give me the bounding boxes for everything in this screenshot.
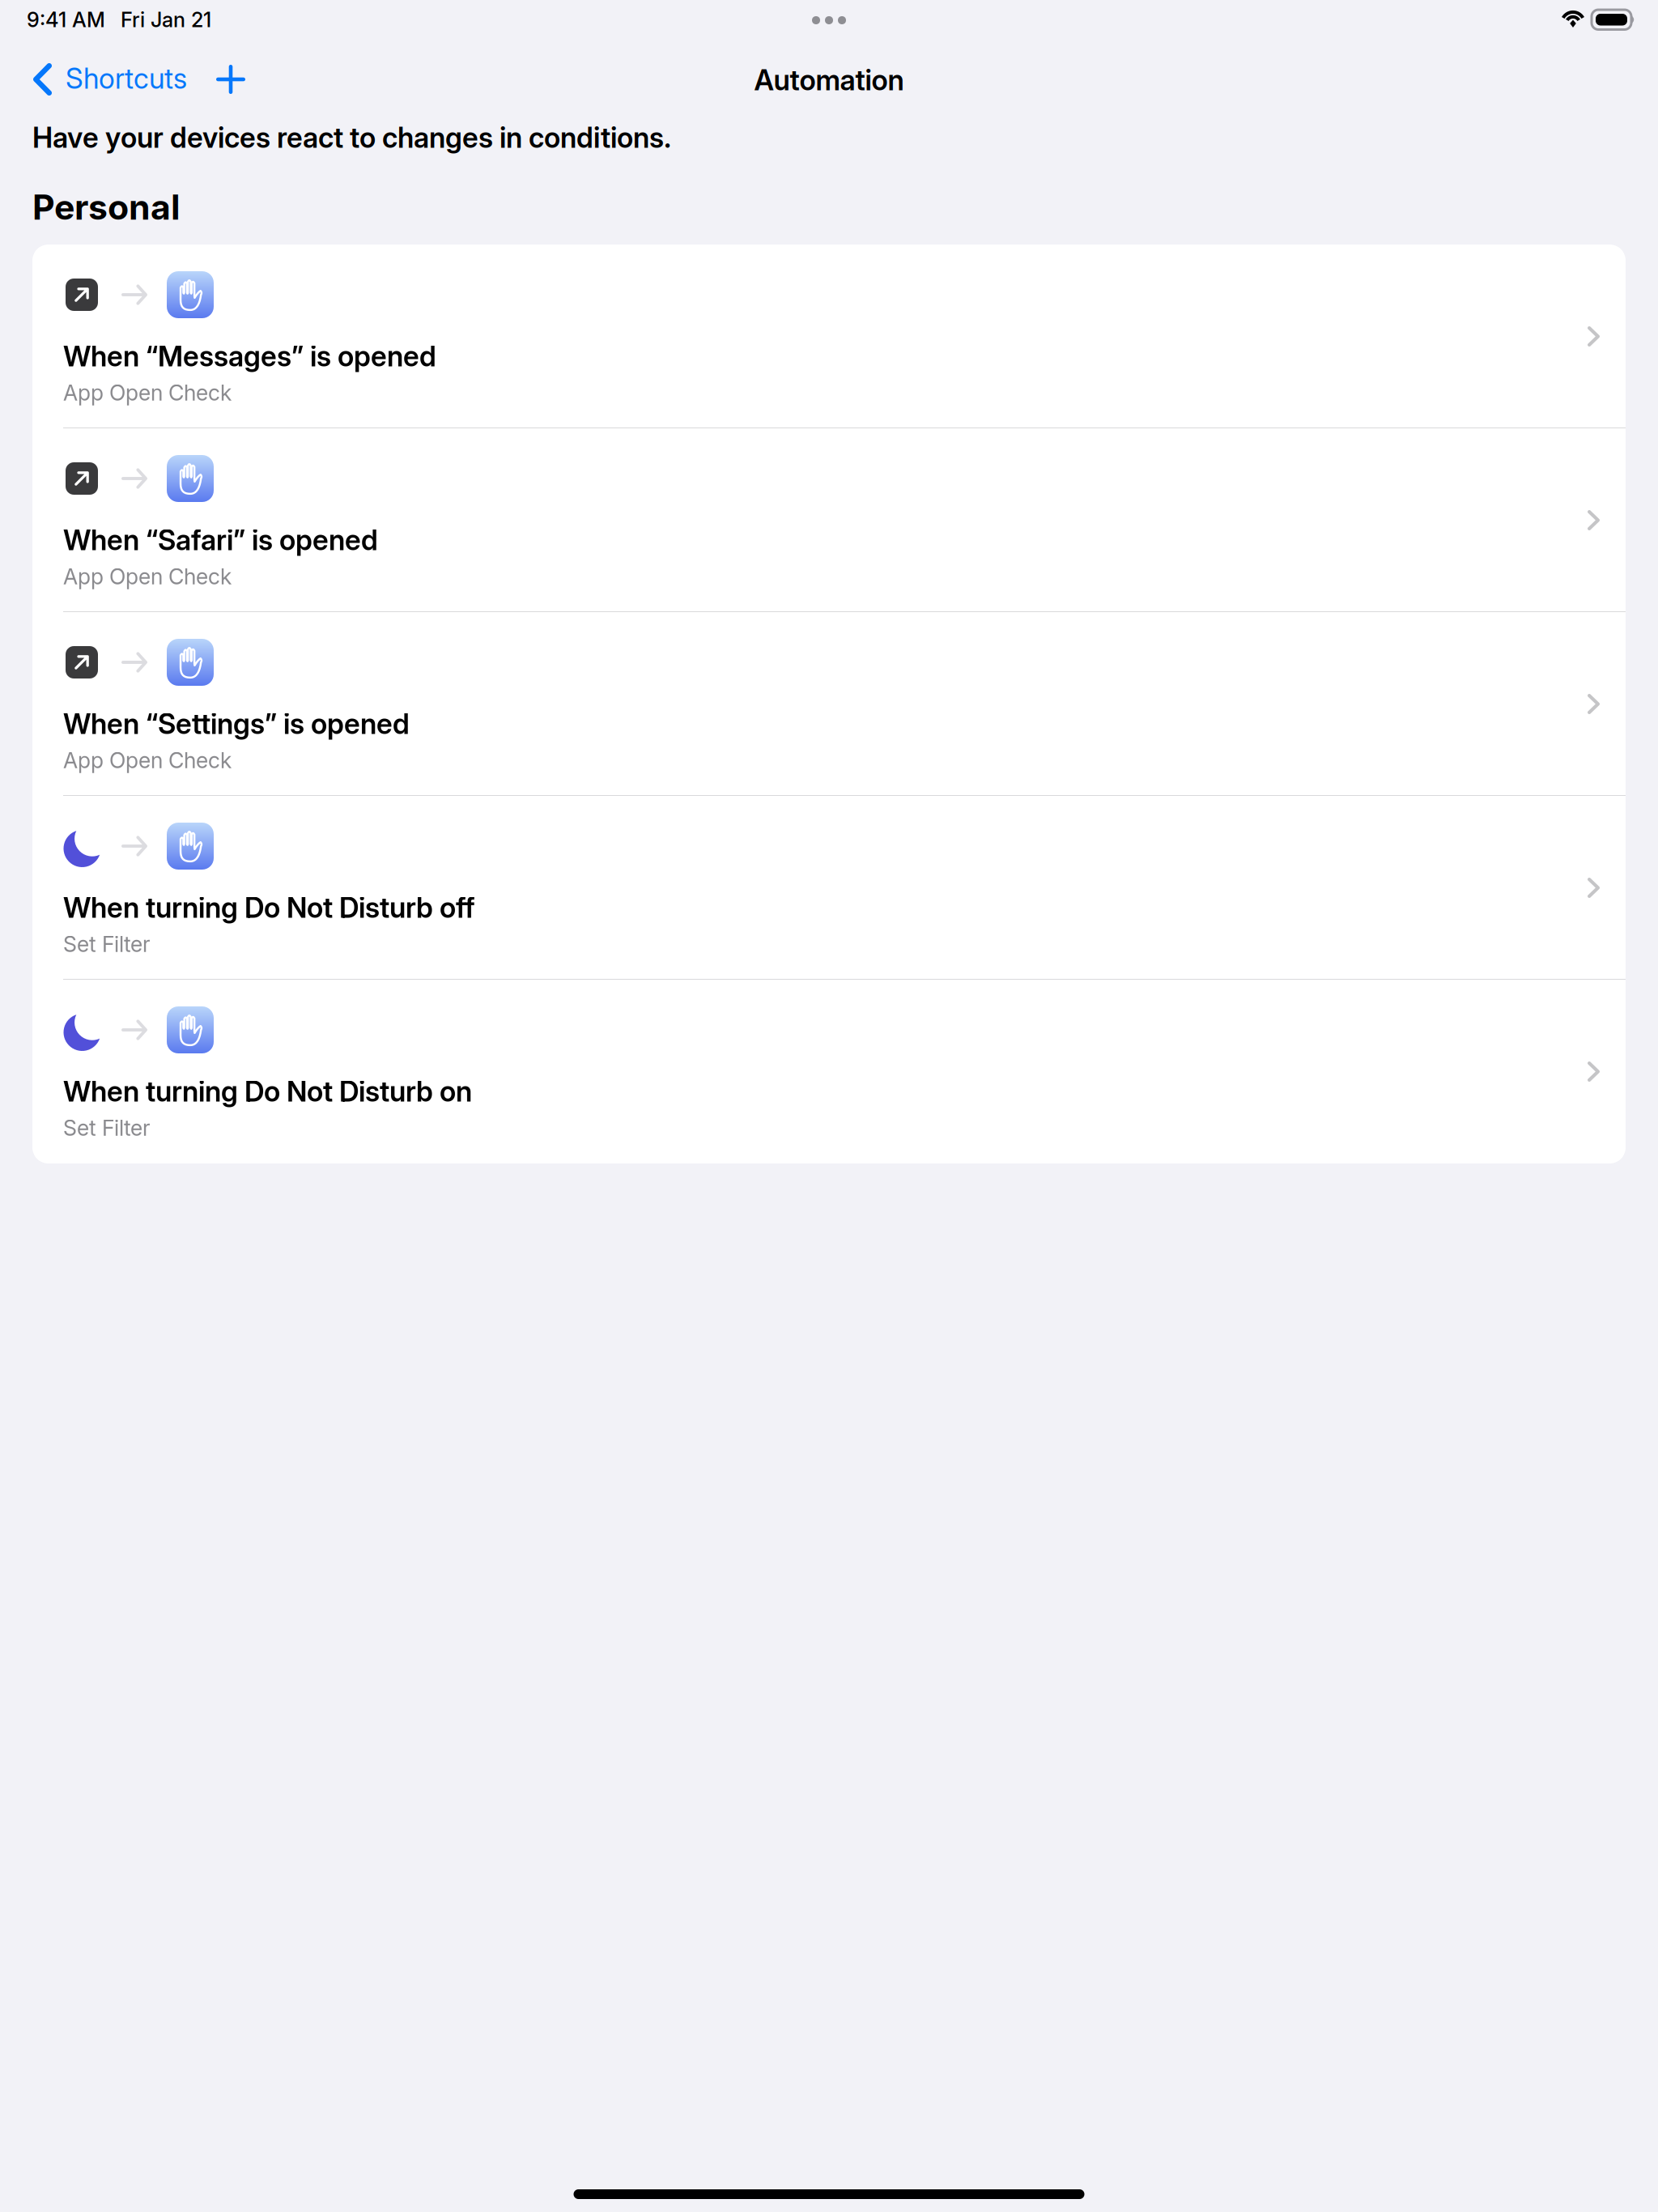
staticText: When “Messages” is opened [63,339,436,373]
staticText: 9:41 AM [27,7,105,32]
staticText: When “Settings” is opened [63,707,410,741]
staticText: When turning Do Not Disturb off [63,891,475,925]
staticText: Fri Jan 21 [121,7,211,32]
staticText: App Open Check [63,564,232,590]
staticText: Have your devices react to changes in co… [32,121,671,155]
staticText: Personal [32,186,181,228]
staticText: Set Filter [63,931,151,957]
staticText: When “Safari” is opened [63,523,378,557]
button[interactable]: When “Safari” is opened [32,428,1626,612]
button[interactable]: When turning Do Not Disturb on [32,980,1626,1163]
button[interactable]: When “Settings” is opened [32,612,1626,796]
button[interactable]: Create Automation [202,55,260,104]
button[interactable]: When “Messages” is opened [32,245,1626,428]
staticText: Shortcuts [66,62,187,95]
staticText: App Open Check [63,380,232,406]
staticText: When turning Do Not Disturb on [63,1074,472,1108]
button[interactable]: When turning Do Not Disturb off [32,796,1626,980]
staticText: App Open Check [63,747,232,773]
button[interactable]: Shortcuts [33,60,198,99]
staticText: Automation [754,63,904,97]
staticText: Set Filter [63,1115,151,1141]
